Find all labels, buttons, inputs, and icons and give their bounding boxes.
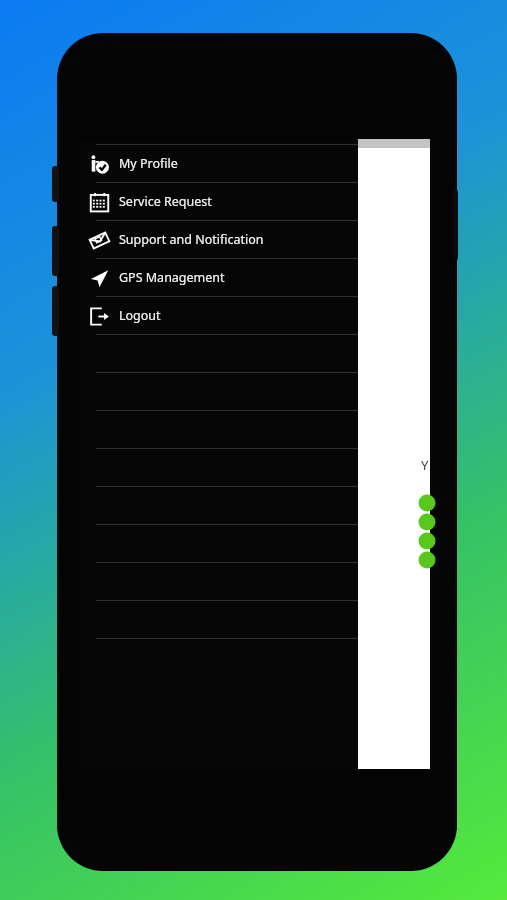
button[interactable]: GPS Management — [79, 259, 358, 297]
staticText: GPS Management — [119, 269, 225, 286]
button[interactable]: Logout — [79, 297, 358, 335]
other: Logout — [90, 307, 109, 326]
other: Support and Notification — [89, 230, 110, 251]
other: My Profile — [89, 154, 110, 175]
staticText: Y — [421, 456, 429, 474]
button[interactable]: My Profile — [79, 145, 358, 183]
staticText: Service Request — [119, 193, 212, 210]
staticText: Logout — [119, 307, 161, 324]
button[interactable]: Service Request — [79, 183, 358, 221]
other: Service Request — [90, 193, 109, 212]
staticText: My Profile — [119, 155, 178, 172]
staticText: Support and Notification — [119, 231, 264, 248]
other: GPS Management — [90, 269, 109, 288]
button[interactable]: Support and Notification — [79, 221, 358, 259]
